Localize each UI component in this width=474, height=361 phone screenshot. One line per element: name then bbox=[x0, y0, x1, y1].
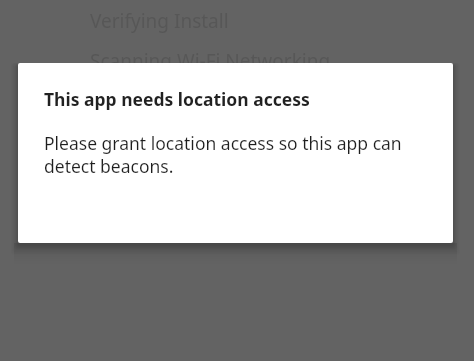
staticText: Please grant location access so this app… bbox=[44, 131, 416, 178]
staticText: Verifying Install bbox=[90, 8, 229, 34]
button[interactable]: This app needs location access bbox=[18, 63, 453, 243]
staticText: Scanning Wi-Fi Networking bbox=[90, 48, 331, 74]
staticText: This app needs location access bbox=[44, 87, 310, 111]
